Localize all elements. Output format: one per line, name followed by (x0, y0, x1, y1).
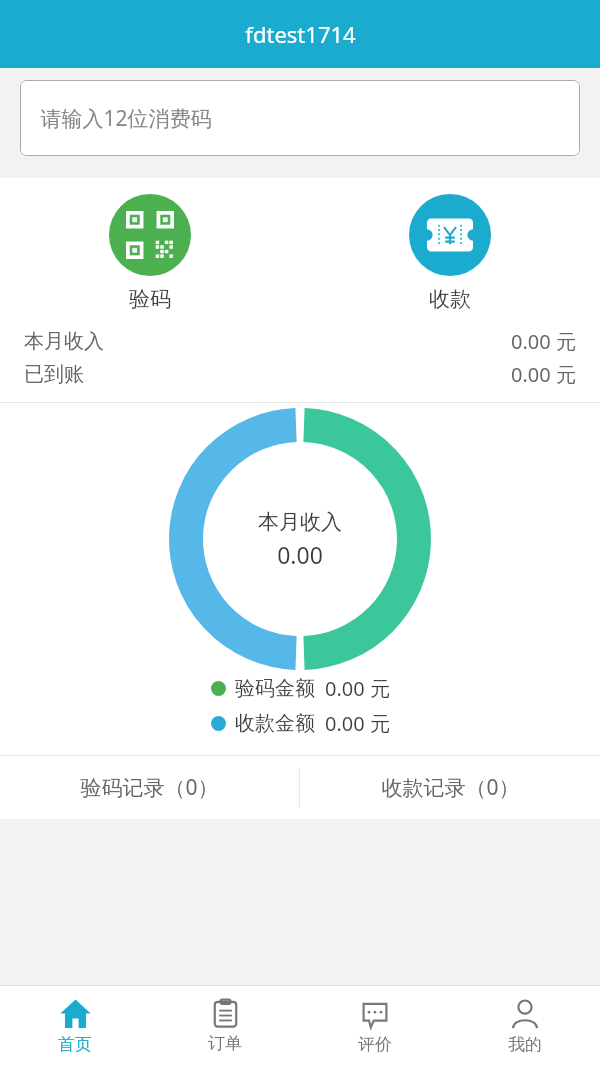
staticText: 已到账 (24, 362, 84, 387)
button[interactable]: 验码记录（0） (0, 756, 299, 819)
staticText: 0.00 元 (511, 328, 576, 355)
other: 评价 (360, 999, 390, 1029)
button[interactable]: 验码 (0, 178, 300, 328)
staticText: 订单 (208, 1033, 242, 1054)
staticText: 收款 (429, 286, 471, 312)
other: 我的 (510, 999, 540, 1029)
staticText: 收款记录（0） (381, 773, 520, 802)
button[interactable]: 我的 (450, 986, 600, 1067)
staticText: 0.00 元 (325, 710, 390, 737)
staticText: 请输入12位消费码 (40, 104, 212, 133)
button[interactable]: 订单 (150, 986, 300, 1067)
staticText: 0.00 (277, 539, 323, 570)
button[interactable]: 首页 (0, 986, 150, 1067)
other: 首页 (60, 998, 91, 1029)
other: 收款 (427, 212, 473, 258)
staticText: 验码金额 (235, 676, 315, 701)
button[interactable]: 请输入12位消费码 (20, 80, 580, 156)
staticText: 验码记录（0） (80, 773, 219, 802)
other: 验码 (126, 211, 174, 259)
staticText: 本月收入 (258, 509, 342, 535)
button[interactable]: 收款 (300, 178, 600, 328)
staticText: 评价 (358, 1034, 392, 1055)
staticText: 我的 (508, 1034, 542, 1055)
staticText: 验码 (129, 286, 171, 312)
staticText: fdtest1714 (245, 19, 356, 49)
button[interactable]: 收款记录（0） (300, 756, 600, 819)
other: 订单 (211, 999, 240, 1028)
staticText: 收款金额 (235, 711, 315, 736)
staticText: 0.00 元 (325, 675, 390, 702)
staticText: 首页 (58, 1034, 92, 1055)
staticText: 0.00 元 (511, 361, 576, 388)
button[interactable]: 评价 (300, 986, 450, 1067)
staticText: 本月收入 (24, 329, 104, 354)
